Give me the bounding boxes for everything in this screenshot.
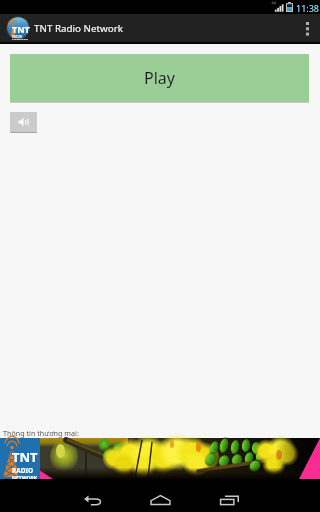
- staticText: NETWORK: [12, 39, 28, 40]
- button[interactable]: More options: [294, 14, 320, 42]
- staticText: TNT: [12, 448, 38, 466]
- button[interactable]: Recent apps: [209, 479, 249, 512]
- staticText: Thông tin thương mại:: [3, 428, 79, 438]
- staticText: TNT Radio Network: [34, 22, 123, 35]
- staticText: 11:38: [296, 2, 320, 14]
- button[interactable]: Home: [140, 479, 180, 512]
- staticText: NETWORK: [12, 475, 38, 479]
- staticText: Play: [144, 67, 175, 89]
- staticText: RADIO: [12, 35, 23, 39]
- button[interactable]: Volume: [10, 112, 37, 132]
- button[interactable]: Play: [10, 54, 309, 102]
- button[interactable]: Back: [73, 479, 113, 512]
- staticText: RADIO: [12, 466, 34, 475]
- staticText: TNT: [12, 23, 30, 35]
- button[interactable]: TNT: [0, 438, 320, 479]
